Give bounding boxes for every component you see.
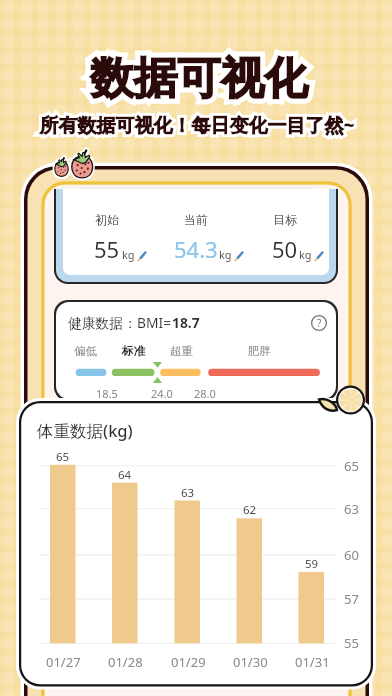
staticText: 所有数据可视化！每日变化一目了然~ <box>39 112 355 138</box>
staticText: 28.0 <box>194 386 216 399</box>
staticText: 01/27 <box>46 653 81 671</box>
staticText: kg <box>122 247 135 262</box>
staticText: kg <box>299 247 312 262</box>
staticText: 54.3 <box>174 234 218 264</box>
staticText: 01/29 <box>171 653 206 671</box>
staticText: 62 <box>243 502 257 518</box>
staticText: 标准 <box>122 344 145 358</box>
staticText: 57 <box>344 590 359 608</box>
staticText: kg <box>219 247 232 262</box>
staticText: 数据可视化 <box>90 51 308 106</box>
staticText: ? <box>317 316 322 330</box>
staticText: 65 <box>344 457 359 475</box>
staticText: 01/31 <box>295 653 330 671</box>
staticText: 63 <box>344 500 359 518</box>
staticText: 超重 <box>170 344 193 358</box>
staticText: 目标 <box>273 212 297 227</box>
button[interactable]: 初始 <box>63 189 329 275</box>
staticText: 01/28 <box>108 653 143 671</box>
button[interactable]: Help <box>311 315 327 331</box>
staticText: 当前 <box>184 212 208 227</box>
staticText: 数据可视化 <box>90 51 308 106</box>
staticText: 18.7 <box>172 313 200 332</box>
staticText: 55 <box>94 234 120 264</box>
staticText: 健康数据：BMI= <box>68 313 172 332</box>
staticText: 50 <box>272 234 298 264</box>
staticText: 63 <box>181 485 195 501</box>
staticText: 偏低 <box>74 344 97 358</box>
staticText: 体重数据(kg) <box>37 419 133 442</box>
staticText: 肥胖 <box>248 344 271 358</box>
staticText: 64 <box>118 467 132 483</box>
staticText: 01/30 <box>233 653 268 671</box>
staticText: 59 <box>305 556 319 572</box>
staticText: 所有数据可视化！每日变化一目了然~ <box>39 112 355 138</box>
staticText: 初始 <box>95 212 119 227</box>
staticText: 18.5 <box>96 386 118 399</box>
button[interactable]: 健康数据：BMI= <box>56 302 336 399</box>
staticText: 55 <box>344 634 359 652</box>
staticText: 65 <box>56 449 70 465</box>
staticText: 24.0 <box>151 386 173 399</box>
staticText: 60 <box>344 546 359 564</box>
